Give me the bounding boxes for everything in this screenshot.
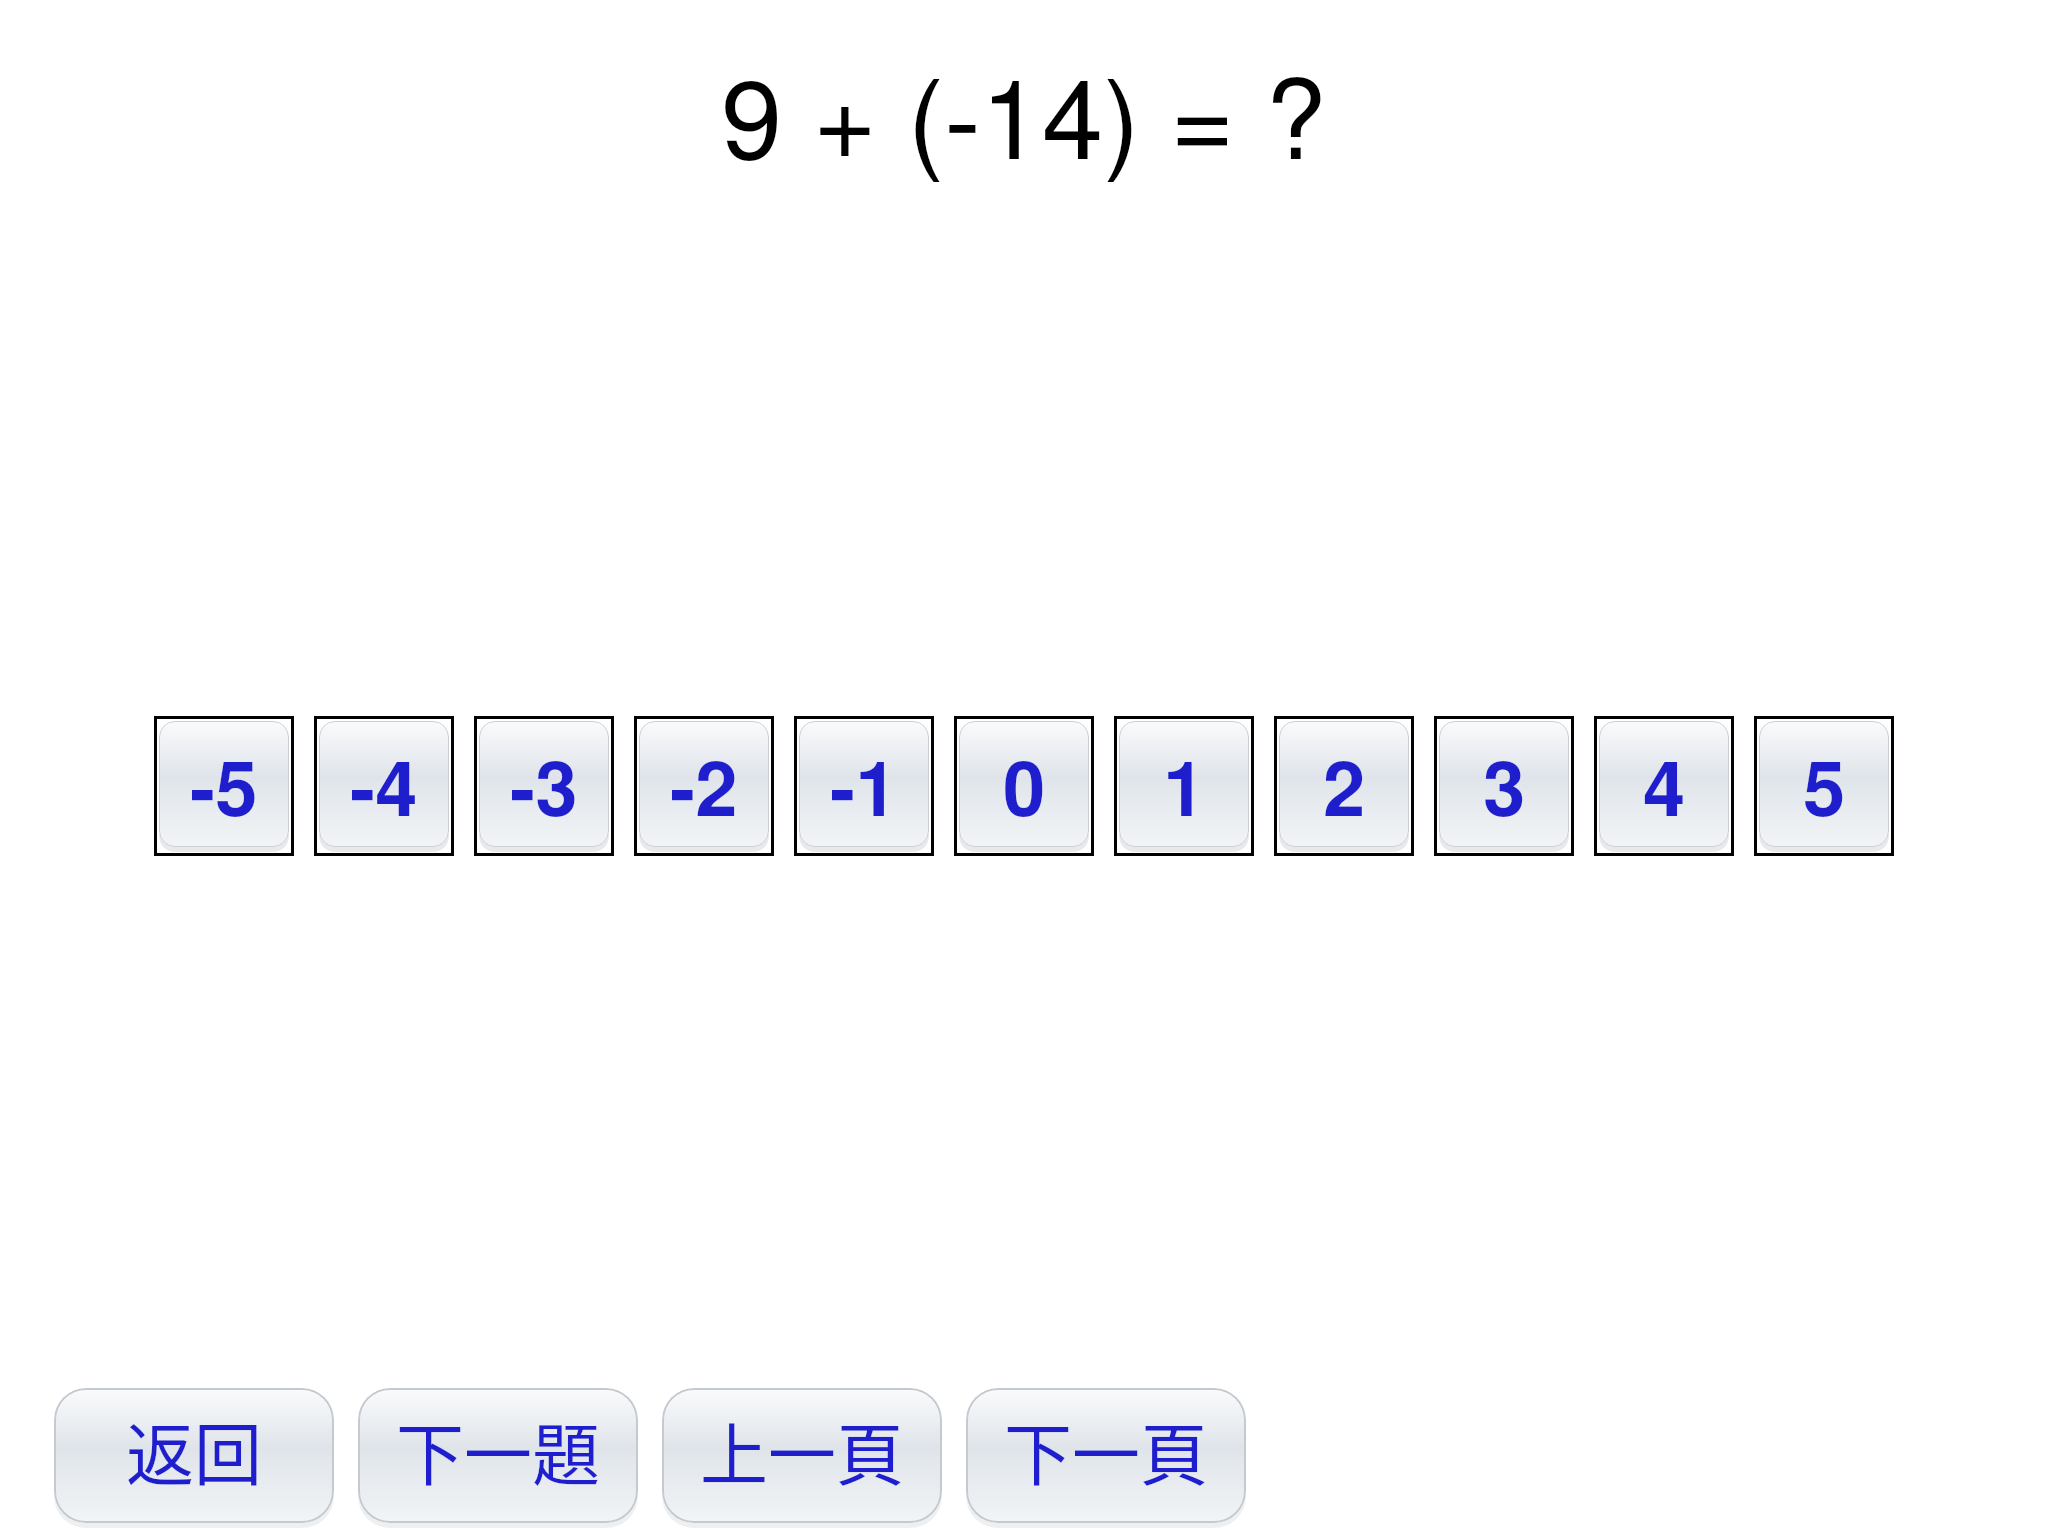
button[interactable]: 下一題 — [358, 1388, 638, 1528]
button[interactable]: -5 — [154, 716, 294, 856]
staticText: 下一題 — [396, 1401, 601, 1499]
staticText: -4 — [350, 730, 418, 839]
button[interactable]: 2 — [1274, 716, 1414, 856]
button[interactable]: 4 — [1594, 716, 1734, 856]
staticText: 4 — [1643, 730, 1686, 839]
staticText: 1 — [1163, 730, 1206, 839]
staticText: 下一頁 — [1004, 1401, 1209, 1499]
button[interactable]: 返回 — [54, 1388, 334, 1528]
button[interactable]: -4 — [314, 716, 454, 856]
staticText: 0 — [1003, 730, 1046, 839]
staticText: -3 — [510, 730, 578, 839]
staticText: -2 — [670, 730, 738, 839]
staticText: -1 — [830, 730, 898, 839]
staticText: -5 — [190, 730, 258, 839]
button[interactable]: -3 — [474, 716, 614, 856]
button[interactable]: -1 — [794, 716, 934, 856]
button[interactable]: 5 — [1754, 716, 1894, 856]
button[interactable]: 3 — [1434, 716, 1574, 856]
staticText: 返回 — [126, 1401, 263, 1499]
button[interactable]: -2 — [634, 716, 774, 856]
staticText: 2 — [1323, 730, 1366, 839]
button[interactable]: 上一頁 — [662, 1388, 942, 1528]
staticText: 3 — [1483, 730, 1526, 839]
button[interactable]: 下一頁 — [966, 1388, 1246, 1528]
staticText: 5 — [1803, 730, 1846, 839]
staticText: 9 + (-14) = ? — [721, 33, 1327, 191]
button[interactable]: 0 — [954, 716, 1094, 856]
button[interactable]: 1 — [1114, 716, 1254, 856]
staticText: 上一頁 — [700, 1401, 905, 1499]
